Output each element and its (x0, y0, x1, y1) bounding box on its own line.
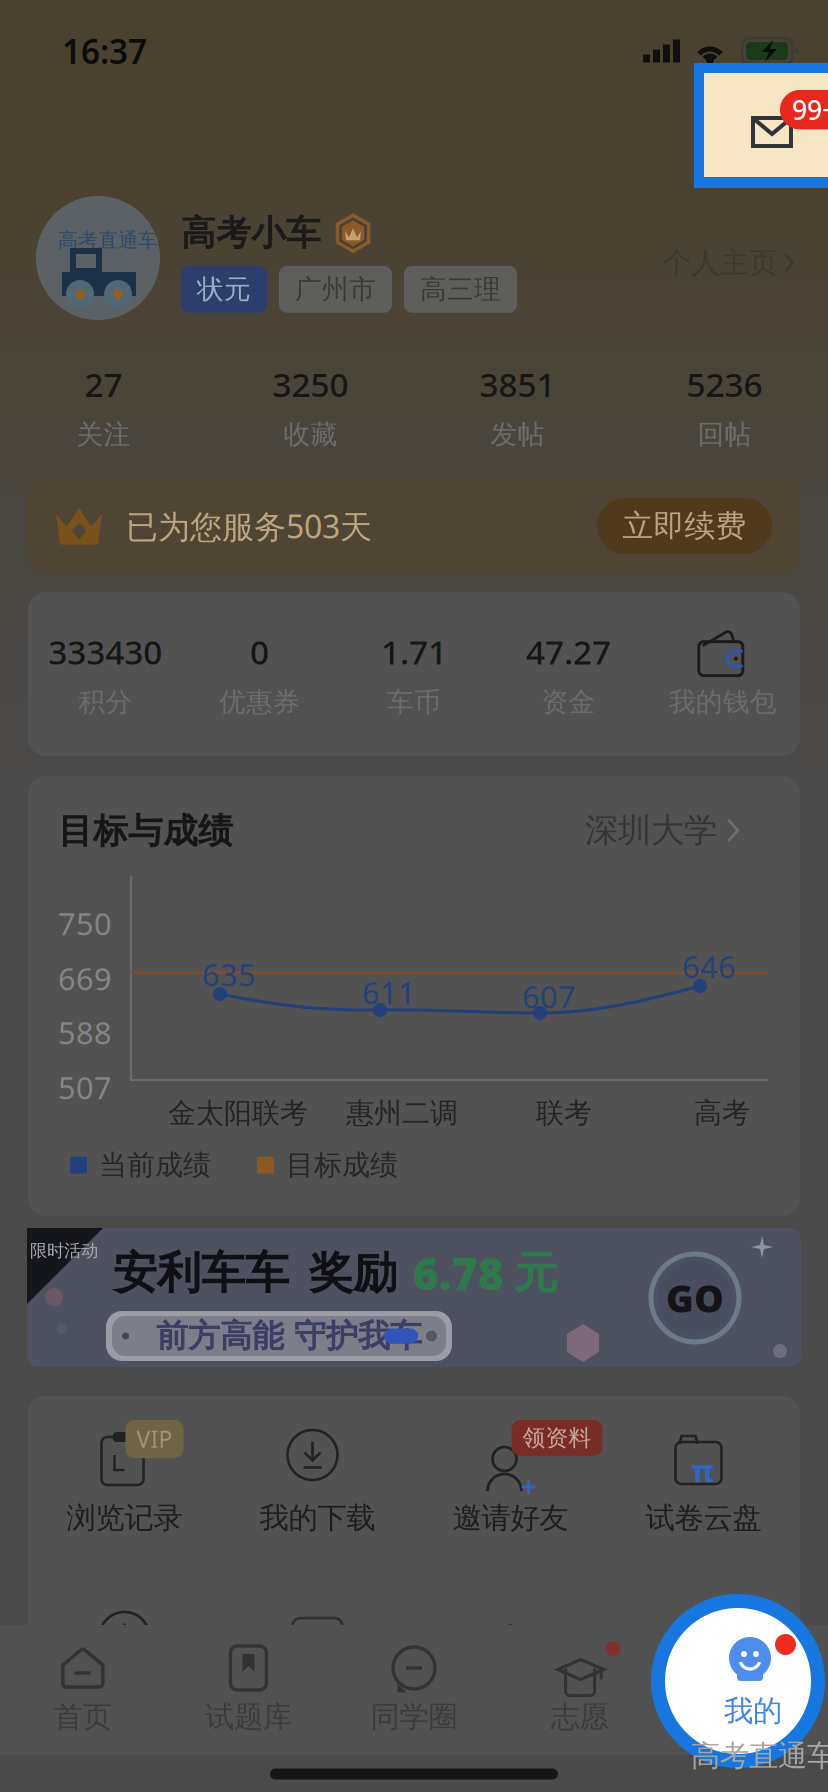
button[interactable]: 27 (0, 362, 207, 451)
staticText: 16:37 (62, 29, 147, 73)
staticText: 高考 (694, 1096, 750, 1130)
staticText: 关注 (76, 418, 130, 451)
button[interactable]: 47.27 (491, 629, 646, 718)
staticText: 高考小车 (181, 212, 321, 255)
staticText: 高三理 (420, 273, 501, 306)
staticText: 车币 (387, 686, 441, 719)
staticText: 领资料 (522, 1424, 591, 1452)
button[interactable]: 3851 (414, 362, 621, 451)
staticText: 目标与成绩 (58, 810, 233, 853)
staticText: 目标成绩 (286, 1148, 398, 1182)
staticText: 607 (522, 976, 576, 1017)
staticText: 333430 (48, 629, 162, 674)
staticText: 浏览记录 (66, 1500, 182, 1536)
button[interactable]: 5236 (621, 362, 828, 451)
button[interactable]: 333430 (28, 629, 182, 718)
staticText: 646 (682, 946, 736, 987)
staticText: 507 (58, 1067, 112, 1108)
button[interactable]: 我的钱包 (646, 630, 800, 718)
staticText: 金太阳联考 (168, 1096, 308, 1130)
staticText: 广州市 (295, 273, 376, 306)
button[interactable]: 广州市 (279, 266, 392, 313)
button[interactable]: 消息 (694, 63, 828, 188)
staticText: π (691, 1450, 714, 1491)
button[interactable]: 1.71 (337, 629, 491, 718)
staticText: 联考 (536, 1096, 592, 1130)
staticText: 限时活动 (30, 1240, 98, 1261)
staticText: 高考直通车 (58, 228, 158, 253)
staticText: 惠州二调 (346, 1096, 458, 1130)
staticText: 同学圈 (370, 1699, 457, 1735)
staticText: 深圳大学 (585, 810, 717, 851)
button[interactable]: 3250 (207, 362, 414, 451)
staticText: 27 (84, 362, 122, 406)
staticText: 669 (58, 958, 112, 999)
staticText: 6.78 (413, 1244, 504, 1302)
staticText: GO (666, 1273, 724, 1323)
button[interactable]: 同学圈 (331, 1645, 497, 1735)
staticText: 0 (250, 629, 269, 674)
staticText: 试题库 (205, 1699, 292, 1735)
staticText: 邀请好友 (452, 1500, 568, 1536)
staticText: 47.27 (526, 629, 611, 674)
staticText: 635 (202, 954, 256, 995)
button[interactable]: 状元 (181, 266, 267, 313)
staticText: 奖励 (309, 1246, 397, 1300)
staticText: 回帖 (697, 418, 751, 451)
staticText: 高考直通车 (691, 1738, 828, 1774)
staticText: 3851 (479, 362, 555, 406)
staticText: 3250 (272, 362, 348, 406)
button[interactable]: 高三理 (404, 266, 517, 313)
button[interactable]: 我的下载 (221, 1426, 414, 1536)
staticText: 611 (362, 972, 416, 1013)
button[interactable]: 0 (182, 629, 337, 718)
staticText: 状元 (197, 273, 251, 306)
staticText: 个人主页 (662, 245, 778, 281)
staticText: 1.71 (381, 629, 447, 674)
staticText: 收藏 (283, 418, 337, 451)
staticText: 588 (58, 1012, 112, 1053)
staticText: 我的 (724, 1693, 782, 1729)
button[interactable]: 限时活动 (27, 1228, 801, 1367)
staticText: 我的钱包 (669, 686, 777, 718)
staticText: 前方高能 守护我车 (156, 1316, 422, 1356)
staticText: 首页 (54, 1699, 112, 1735)
staticText: 优惠券 (219, 686, 300, 719)
staticText: 我的 (716, 1699, 774, 1735)
button[interactable]: 试题库 (166, 1645, 331, 1735)
staticText: 99+ (792, 92, 828, 127)
staticText: 当前成绩 (99, 1148, 211, 1182)
staticText: 我的下载 (259, 1500, 375, 1536)
staticText: 志愿 (551, 1699, 609, 1735)
button[interactable]: 我的 (662, 1645, 828, 1735)
staticText: 已为您服务503天 (126, 505, 372, 547)
staticText: 试卷云盘 (645, 1500, 761, 1536)
staticText: 积分 (78, 686, 132, 719)
button[interactable]: 领资料 (414, 1426, 607, 1536)
button[interactable]: 立即续费 (597, 498, 772, 554)
button[interactable]: 个人主页 (662, 235, 794, 291)
button[interactable]: π (607, 1426, 800, 1536)
staticText: 安利车车 (113, 1246, 289, 1300)
button[interactable]: 志愿 (497, 1645, 662, 1735)
staticText: 元 (514, 1246, 558, 1300)
button[interactable]: 深圳大学 (585, 810, 739, 851)
staticText: 750 (58, 903, 112, 944)
staticText: 立即续费 (622, 507, 746, 545)
staticText: 5236 (686, 362, 762, 406)
staticText: 资金 (541, 686, 595, 719)
staticText: VIP (136, 1424, 172, 1454)
button[interactable]: 我的 (651, 1594, 825, 1768)
button[interactable]: VIP (28, 1426, 221, 1536)
staticText: 发帖 (490, 418, 544, 451)
button[interactable]: 首页 (0, 1645, 166, 1735)
